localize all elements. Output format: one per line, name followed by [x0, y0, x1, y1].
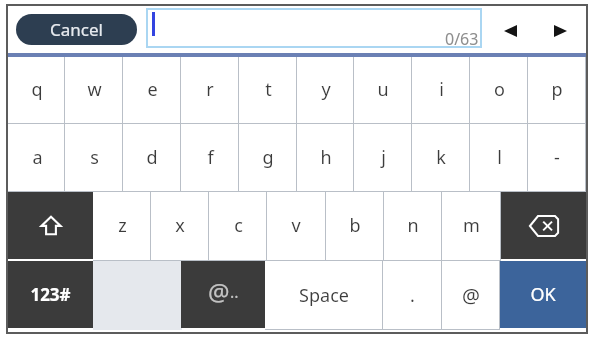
button[interactable]: f [181, 124, 239, 192]
button[interactable]: m [442, 192, 500, 261]
button[interactable]: @ [442, 261, 500, 330]
button[interactable]: Symbols [181, 261, 265, 328]
button[interactable]: Backspace [501, 192, 586, 259]
button[interactable]: l [470, 124, 528, 192]
staticText: m [463, 213, 480, 238]
button[interactable]: j [354, 124, 412, 192]
staticText: d [146, 145, 158, 170]
staticText: . [410, 283, 415, 308]
staticText: p [551, 77, 563, 102]
button[interactable]: s [65, 124, 123, 192]
staticText: - [554, 145, 560, 170]
staticText: x [175, 213, 185, 238]
button[interactable]: o [470, 57, 528, 124]
staticText: w [87, 77, 102, 102]
staticText: k [436, 145, 446, 170]
staticText: Space [299, 283, 349, 308]
button[interactable]: w [65, 57, 123, 124]
staticText: h [320, 145, 332, 170]
staticText: i [439, 77, 444, 102]
button[interactable]: u [354, 57, 412, 124]
staticText: o [494, 77, 505, 102]
staticText: OK [530, 282, 556, 307]
button[interactable]: i [412, 57, 470, 124]
button[interactable]: Shift [8, 192, 93, 259]
button[interactable]: Space [265, 261, 383, 330]
button[interactable]: k [412, 124, 470, 192]
button[interactable]: c [209, 192, 267, 261]
button[interactable]: 123# [8, 261, 93, 328]
button[interactable]: e [123, 57, 181, 124]
staticText: v [291, 213, 301, 238]
staticText: n [407, 213, 419, 238]
button[interactable]: Cancel [16, 14, 137, 45]
staticText: r [206, 77, 214, 102]
staticText: y [321, 77, 331, 102]
staticText: 123# [30, 283, 71, 306]
button[interactable]: Next [540, 11, 580, 51]
staticText: z [118, 213, 127, 238]
staticText: b [349, 213, 361, 238]
button[interactable]: v [267, 192, 325, 261]
button[interactable]: t [239, 57, 297, 124]
staticText: u [377, 77, 389, 102]
staticText: j [381, 145, 386, 170]
staticText: .. [230, 281, 239, 303]
button[interactable]: p [528, 57, 586, 124]
button[interactable]: . [383, 261, 442, 330]
staticText: t [265, 77, 272, 102]
button[interactable]: n [384, 192, 442, 261]
staticText: g [262, 145, 274, 170]
button[interactable]: d [123, 124, 181, 192]
button[interactable]: - [528, 124, 586, 192]
staticText: e [147, 77, 158, 102]
button[interactable]: g [239, 124, 297, 192]
staticText: @ [208, 275, 230, 308]
button[interactable]: y [297, 57, 355, 124]
button[interactable]: r [181, 57, 239, 124]
staticText: l [497, 145, 502, 170]
staticText: c [234, 213, 243, 238]
button[interactable]: a [8, 124, 66, 192]
staticText: f [207, 145, 214, 170]
button[interactable]: h [297, 124, 355, 192]
button[interactable]: Previous [490, 11, 530, 51]
button[interactable]: OK [500, 261, 586, 328]
staticText: 0/63 [445, 28, 479, 50]
button[interactable]: b [326, 192, 384, 261]
button[interactable]: 0/63 [146, 8, 482, 48]
staticText: q [31, 77, 43, 102]
staticText: @ [462, 282, 480, 309]
button[interactable]: x [151, 192, 209, 261]
staticText: s [90, 145, 99, 170]
button[interactable]: q [8, 57, 66, 124]
button[interactable]: z [93, 192, 151, 261]
staticText: a [32, 145, 43, 170]
button[interactable] [93, 261, 182, 330]
staticText: Cancel [50, 18, 103, 41]
